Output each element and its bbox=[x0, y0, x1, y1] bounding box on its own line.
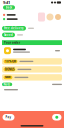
staticText: BONUS bbox=[5, 68, 14, 71]
staticText: Pay bbox=[5, 115, 11, 119]
button[interactable]: 10% OFF bbox=[2, 58, 62, 65]
button[interactable]: Saved bbox=[2, 33, 15, 37]
staticText: 9:41 bbox=[3, 0, 10, 5]
button[interactable]: BONUS bbox=[2, 66, 62, 73]
staticText: Free delivery bbox=[4, 26, 24, 30]
staticText: NEW bbox=[5, 76, 11, 79]
button[interactable]: NEW bbox=[2, 74, 62, 81]
staticText: 10% OFF bbox=[5, 60, 16, 63]
button[interactable]: Status bbox=[52, 114, 61, 120]
button[interactable]: Free delivery bbox=[2, 26, 26, 31]
staticText: Note bbox=[4, 83, 11, 86]
staticText: Your order bbox=[4, 41, 20, 44]
staticText: Back bbox=[5, 6, 12, 9]
staticText: Saved bbox=[4, 33, 13, 37]
button[interactable]: Back bbox=[3, 5, 15, 10]
button[interactable]: Pay bbox=[2, 114, 14, 120]
